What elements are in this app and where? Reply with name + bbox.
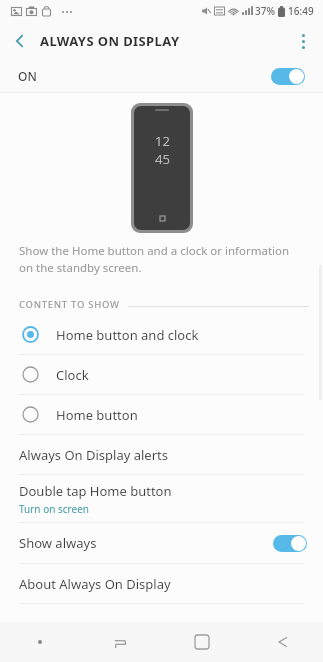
button[interactable]: Recents (80, 622, 161, 662)
staticText: 45 (155, 150, 170, 168)
button[interactable]: Show always (0, 523, 323, 563)
button[interactable]: Back (0, 22, 40, 60)
staticText: Home button and clock (56, 326, 199, 344)
staticText: ON (18, 68, 37, 84)
staticText: About Always On Display (19, 575, 171, 593)
staticText: Always On Display alerts (19, 446, 168, 464)
button[interactable]: More options (283, 22, 323, 60)
staticText: Show the Home button and a clock or info… (19, 243, 301, 275)
button[interactable]: Clock (0, 355, 323, 394)
button[interactable]: About Always On Display (0, 564, 323, 603)
button[interactable]: Double tap Home button (0, 475, 323, 522)
staticText: Double tap Home button (19, 482, 172, 500)
staticText: Clock (56, 366, 89, 384)
staticText: 12 (155, 132, 170, 150)
staticText: CONTENT TO SHOW (19, 298, 120, 311)
button[interactable]: Home button and clock (0, 315, 323, 354)
staticText: Show always (19, 534, 97, 552)
staticText: ALWAYS ON DISPLAY (40, 32, 180, 50)
button[interactable]: Always On Display alerts (0, 435, 323, 474)
staticText: 16:49 (288, 4, 314, 18)
staticText: Home button (56, 406, 138, 424)
button[interactable]: Back (242, 622, 323, 662)
button[interactable]: Home button (0, 395, 323, 434)
button[interactable]: Menu (0, 622, 80, 662)
staticText: 37% (255, 4, 275, 18)
button[interactable]: Home (161, 622, 242, 662)
staticText: Turn on screen (19, 502, 89, 516)
button[interactable]: ON (0, 60, 323, 92)
